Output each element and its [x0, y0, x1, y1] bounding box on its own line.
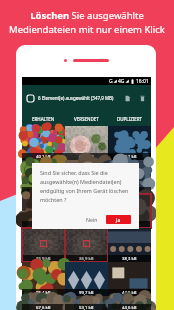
button[interactable]: ERHALTEN — [22, 111, 65, 126]
staticText: DUPLIZIERT — [117, 116, 143, 122]
button[interactable]: DUPLIZIERT — [108, 111, 151, 126]
staticText: 38,4 kB — [122, 188, 137, 194]
staticText: 53,1 kB — [79, 305, 94, 310]
staticText: 36,9 kB — [79, 188, 94, 194]
button[interactable]: 44,6 kB — [65, 126, 108, 160]
button[interactable]: 44,6 kB — [108, 296, 151, 310]
staticText: G — [109, 78, 113, 85]
button[interactable]: 67,6 kB — [22, 296, 65, 310]
staticText: Ja — [116, 216, 121, 223]
staticText: 99,7 kB — [79, 290, 94, 296]
staticText: 16:01 — [136, 78, 149, 85]
staticText: 35,9 kB — [36, 188, 51, 194]
button[interactable]: 38,4 kB — [108, 160, 151, 194]
staticText: 40,1 kB — [36, 154, 51, 160]
button[interactable]: 33,8 kB — [108, 194, 151, 228]
staticText: Löschen Sie ausgewählte — [30, 9, 144, 22]
staticText: 6 Element(e) ausgewählt (347,9 MB) — [38, 95, 114, 101]
button[interactable]: 35,9 kB — [22, 160, 65, 194]
staticText: 35,9 kB — [36, 256, 51, 262]
staticText: 33,8 kB — [122, 222, 137, 228]
button[interactable]: Save — [123, 94, 132, 103]
staticText: Mediendateien mit nur einem Klick — [9, 23, 165, 36]
staticText: 44,6 kB — [79, 154, 94, 160]
button[interactable]: Delete — [138, 94, 147, 103]
button[interactable]: VERSENDET — [65, 111, 108, 126]
staticText: ERHALTEN — [32, 116, 55, 122]
button[interactable]: 32,1 kB — [108, 126, 151, 160]
button[interactable]: Nein — [83, 214, 101, 225]
staticText: 95,4 kB — [36, 290, 51, 296]
button[interactable]: 41,2 kB — [22, 194, 65, 228]
staticText: 4G — [118, 78, 125, 85]
button[interactable]: 99,7 kB — [65, 262, 108, 296]
staticText: 38,3 kB — [122, 256, 137, 262]
staticText: 44,6 kB — [122, 305, 137, 310]
button[interactable]: 40,1 kB — [22, 126, 65, 160]
staticText: 32,1 kB — [122, 154, 137, 160]
button[interactable]: 29,3 kB — [65, 194, 108, 228]
staticText: Sind Sie sicher, dass Sie die ausgewählt… — [40, 169, 131, 203]
staticText: Nein — [86, 216, 98, 223]
button[interactable]: 38,3 kB — [108, 228, 151, 262]
staticText: 67,6 kB — [36, 305, 51, 310]
button[interactable]: 35,9 kB — [22, 228, 65, 262]
staticText: 44,6 kB — [122, 290, 137, 296]
button[interactable]: Ja — [106, 215, 131, 224]
button[interactable]: 36,9 kB — [65, 228, 108, 262]
button[interactable]: 44,6 kB — [108, 262, 151, 296]
button[interactable]: 95,4 kB — [22, 262, 65, 296]
button[interactable]: Select all — [27, 95, 34, 102]
staticText: VERSENDET — [74, 116, 99, 122]
button[interactable]: 53,1 kB — [65, 296, 108, 310]
staticText: 36,9 kB — [79, 256, 94, 262]
button[interactable]: 36,9 kB — [65, 160, 108, 194]
